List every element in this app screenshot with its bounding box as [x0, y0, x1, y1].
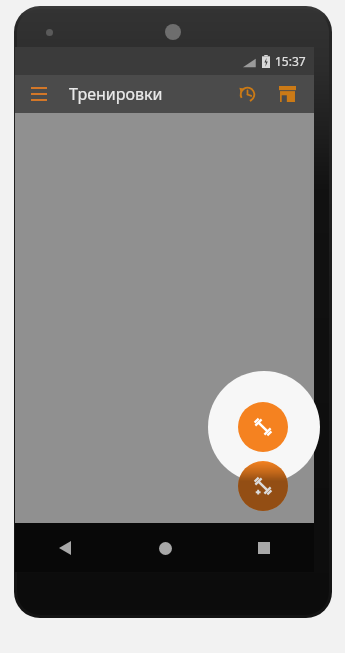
button[interactable]: History [230, 77, 264, 111]
staticText: Тренировки [69, 83, 163, 105]
button[interactable]: Back [35, 533, 95, 563]
button[interactable]: Store [270, 77, 304, 111]
button[interactable]: Home [135, 533, 195, 563]
button[interactable]: Start workout [238, 402, 288, 452]
button[interactable]: Open navigation menu [23, 78, 55, 110]
button[interactable]: Add workout [238, 461, 288, 511]
staticText: 15:37 [275, 53, 306, 69]
button[interactable]: Recent apps [234, 533, 294, 563]
